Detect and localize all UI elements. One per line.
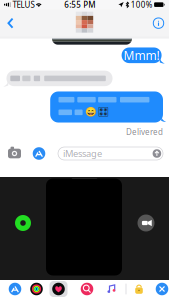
- staticText: Delivered: [126, 126, 163, 137]
- button[interactable]: Switch to video: [135, 212, 157, 234]
- button[interactable]: More apps: [152, 280, 169, 298]
- button[interactable]: Record: [12, 212, 34, 234]
- staticText: iMessage: [63, 147, 102, 160]
- button[interactable]: Digital Touch: [48, 280, 68, 298]
- button[interactable]: Apple Pay: [129, 280, 149, 298]
- staticText: 100%: [131, 0, 153, 10]
- staticText: 🎛: [97, 106, 109, 117]
- button[interactable]: Fitness: [26, 280, 46, 298]
- button[interactable]: Contact: [76, 13, 93, 34]
- button[interactable]: Details: [150, 10, 167, 36]
- staticText: Mmm!: [124, 47, 160, 63]
- button[interactable]: Send: [153, 149, 161, 158]
- button[interactable]: App Store: [5, 280, 25, 298]
- staticText: 6:55 PM: [64, 0, 95, 10]
- button[interactable]: Apps: [29, 144, 48, 163]
- staticText: 😄: [84, 106, 96, 117]
- button[interactable]: Back: [2, 10, 19, 36]
- button[interactable]: Images: [77, 280, 97, 298]
- button[interactable]: Camera: [5, 144, 24, 163]
- staticText: TELUS: [12, 0, 34, 10]
- button[interactable]: Music: [101, 280, 121, 298]
